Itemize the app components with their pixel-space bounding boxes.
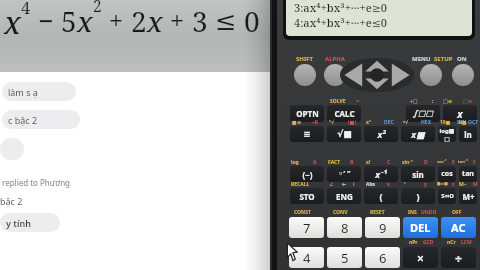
staticText: ÷R [312,119,319,126]
button[interactable]: M+ [459,188,477,204]
staticText: y tính [6,217,31,229]
button[interactable]: ln [459,126,477,142]
staticText: 5 [341,249,349,267]
staticText: F [473,159,476,166]
button[interactable]: Alpha key [324,64,346,86]
button[interactable]: ÷ [441,247,476,268]
button[interactable]: DEL [403,217,438,238]
button[interactable]: √■ [327,126,361,142]
staticText: z [452,181,455,188]
staticText: M− [459,181,467,188]
staticText: ) [416,190,420,202]
staticText: (−) [302,169,313,180]
button[interactable]: ∫□□ [406,105,440,122]
staticText: ■⇔■ [437,181,448,186]
staticText: LCM [461,239,472,246]
staticText: 4 [303,249,311,267]
staticText: SOLVE [330,98,346,105]
button[interactable]: × [403,247,438,268]
staticText: c bậc 2 [8,114,38,126]
staticText: M [473,181,478,188]
button[interactable]: x² [364,126,398,142]
button[interactable]: c bậc 2 [2,110,80,129]
button[interactable]: x [443,105,477,122]
button[interactable]: tan [459,166,477,182]
staticText: x [77,2,93,40]
staticText: M+ [462,191,475,202]
button[interactable]: Shift key [294,64,316,86]
staticText: 4:ax⁴+bx³+···+e≤0 [294,15,388,30]
staticText: + [163,2,192,37]
staticText: 2 [131,2,147,40]
staticText: ′ [404,181,406,188]
staticText: ÷□ [410,98,418,105]
button[interactable]: CALC [327,105,361,122]
staticText: AC [451,220,466,235]
staticText: C [387,159,391,166]
staticText: log [291,159,299,166]
staticText: Abs [366,181,376,188]
button[interactable]: cos [438,166,456,182]
staticText: cos [441,169,453,179]
staticText: INS [408,209,417,216]
staticText: 3 [192,2,208,40]
button[interactable]: x⁻¹ [364,166,398,182]
button[interactable]: 9 [365,217,400,238]
staticText: OFF [452,209,462,216]
staticText: STO [299,191,315,202]
staticText: MENU [412,55,431,63]
staticText: UNDO [421,209,437,216]
staticText: 0 [244,2,260,40]
staticText: x■ [411,128,425,140]
button[interactable]: ≡ [290,126,324,142]
button[interactable]: AC [441,217,476,238]
button[interactable]: 4 [289,247,324,268]
staticText: ← [342,181,347,187]
staticText: − [31,2,61,39]
staticText: 8 [341,219,349,237]
button[interactable]: 8 [327,217,362,238]
button[interactable]: ( [364,188,398,204]
button[interactable]: Directional pad [340,58,414,92]
button[interactable]: 5 [327,247,362,268]
button[interactable]: 7 [289,217,324,238]
button[interactable]: (−) [290,166,324,182]
staticText: A [313,159,317,166]
button[interactable]: OPTN [290,105,324,122]
staticText: bậc 2 [0,195,23,207]
staticText: □≡ [463,98,472,104]
button[interactable]: 6 [365,247,400,268]
staticText: SHIFT [296,55,313,63]
button[interactable]: ◦′ ″ [327,166,361,182]
staticText: CALC [334,108,355,119]
button[interactable]: STO [290,188,324,204]
button[interactable]: Menu Setup key [420,64,442,86]
button[interactable]: log■□ [438,126,456,142]
button[interactable]: ENG [327,188,361,204]
staticText: B [350,159,354,166]
staticText: OCT [468,119,479,126]
staticText: BIN [457,119,467,126]
button[interactable]: x■ [401,126,435,142]
button[interactable]: S⇔D [438,188,456,204]
staticText: 2 [93,0,102,17]
staticText: 6 [379,249,387,267]
button[interactable]: On key [452,64,474,86]
staticText: × [417,250,424,266]
staticText: + [102,2,131,37]
button[interactable]: ) [401,188,435,204]
button[interactable]: sin [401,166,435,182]
staticText: 4 [21,0,31,18]
staticText: i [353,181,355,188]
staticText: cos⁻¹ [437,159,447,164]
staticText: e■ [459,119,467,126]
staticText: ON [457,55,467,63]
staticText: nCr [447,239,456,246]
button[interactable]: y tính [0,213,60,232]
button[interactable]: làm s ạ [2,82,76,101]
staticText: ≡ [303,129,311,139]
staticText: ˣ√ [403,119,409,126]
staticText: y [424,181,427,188]
staticText: CONV [333,209,348,216]
staticText: CONST [294,209,311,216]
